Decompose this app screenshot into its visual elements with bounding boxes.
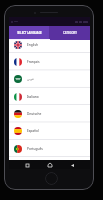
staticText: Español	[27, 129, 39, 133]
button[interactable]: Português	[9, 140, 90, 157]
staticText: CATEGORY	[63, 31, 77, 35]
button[interactable]: Home	[46, 161, 54, 169]
button[interactable]: English	[9, 36, 90, 53]
staticText: Português	[27, 147, 43, 151]
button[interactable]: Back	[68, 161, 76, 169]
staticText: English	[27, 43, 39, 47]
button[interactable]: Deutsche	[9, 105, 90, 122]
button[interactable]: Français	[9, 53, 90, 70]
staticText: SELECT LANGUAGE	[17, 31, 42, 35]
staticText: Français	[27, 60, 40, 64]
button[interactable]: Español	[9, 122, 90, 139]
staticText: عربي	[27, 77, 35, 81]
staticText: Italiano	[27, 95, 39, 99]
button[interactable]: Italiano	[9, 88, 90, 105]
button[interactable]: SELECT LANGUAGE	[9, 26, 49, 40]
staticText: Deutsche	[27, 112, 42, 116]
button[interactable]: CATEGORY	[49, 26, 90, 40]
button[interactable]: Recents	[23, 161, 31, 169]
button[interactable]: عربي	[9, 70, 90, 87]
